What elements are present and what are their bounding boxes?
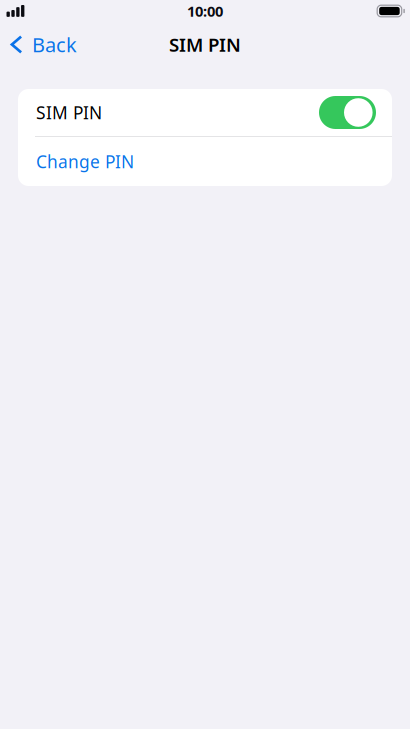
button[interactable]: Back <box>0 22 87 67</box>
staticText: SIM PIN <box>36 101 102 124</box>
staticText: Change PIN <box>36 150 134 173</box>
button[interactable]: Change PIN <box>18 137 392 186</box>
staticText: 10:00 <box>187 1 223 21</box>
button[interactable]: On <box>319 96 376 129</box>
staticText: Back <box>32 31 77 58</box>
staticText: SIM PIN <box>169 32 241 57</box>
